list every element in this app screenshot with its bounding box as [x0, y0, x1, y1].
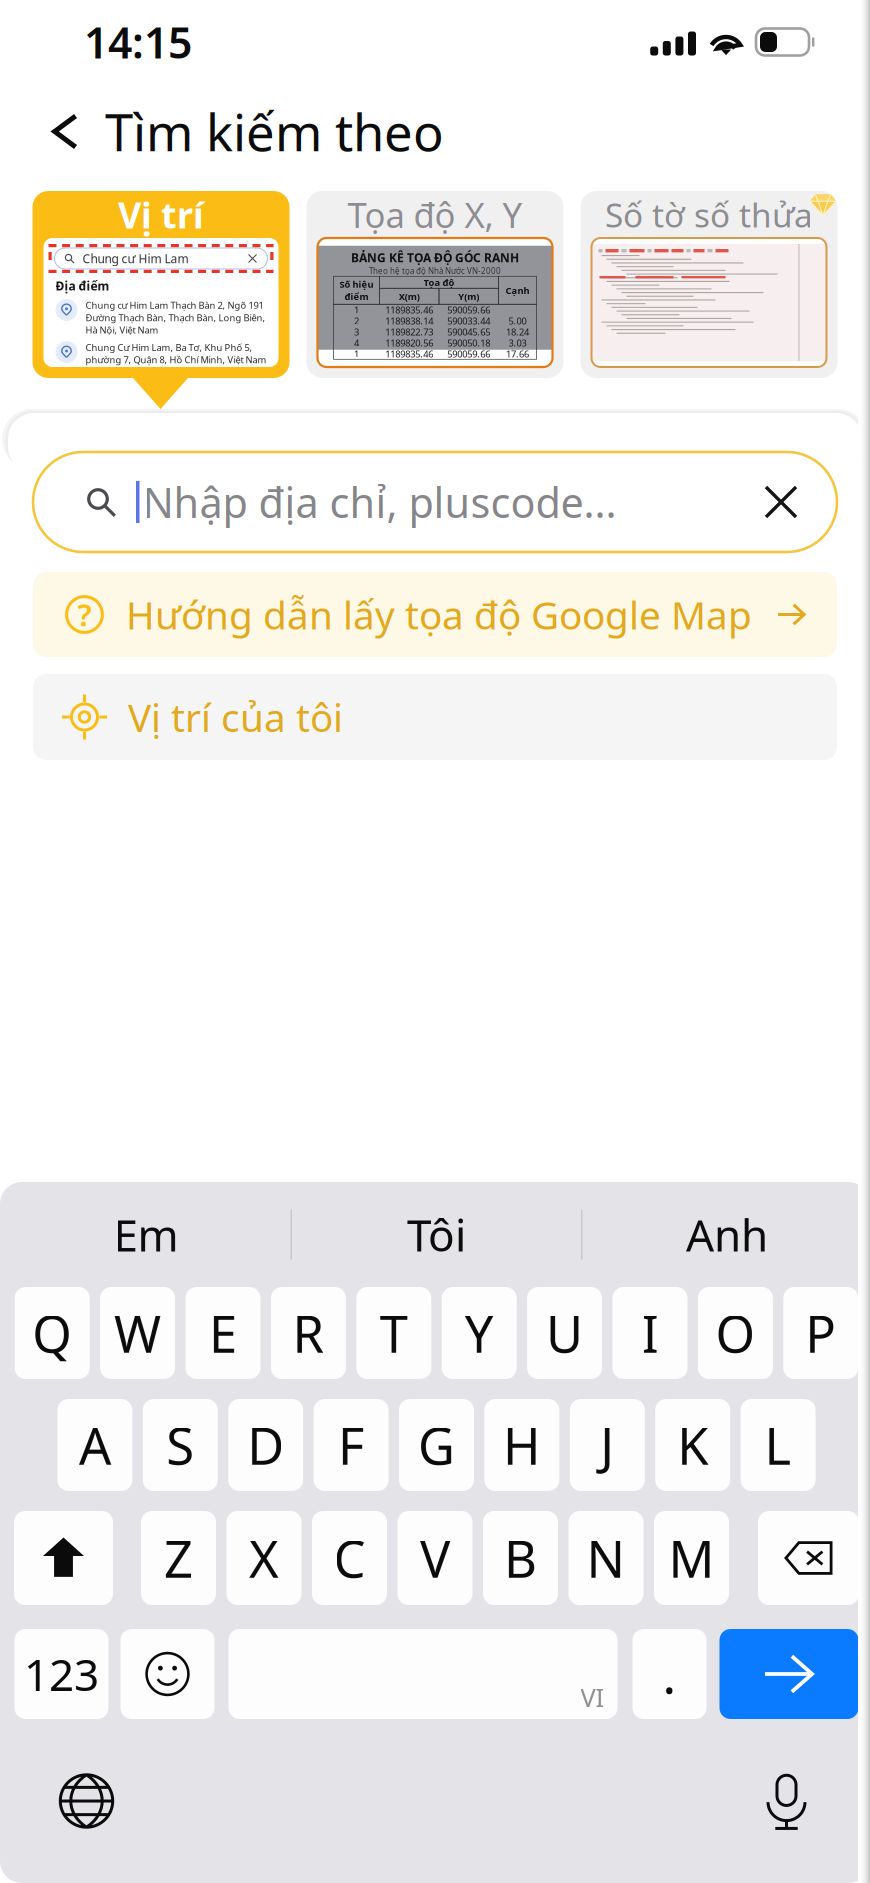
button[interactable]: I — [612, 1287, 687, 1379]
button[interactable]: Shift — [14, 1511, 113, 1605]
staticText: P — [805, 1299, 836, 1367]
button[interactable]: Q — [15, 1287, 90, 1379]
button[interactable]: Delete — [758, 1511, 859, 1605]
staticText: N — [586, 1524, 625, 1592]
button[interactable]: E — [185, 1287, 260, 1379]
staticText: Theo hệ tọa độ Nhà Nước VN-2000 — [369, 266, 501, 276]
staticText: D — [247, 1411, 284, 1479]
staticText: 590050.18 — [447, 337, 490, 349]
staticText: Tôi — [407, 1205, 466, 1264]
button[interactable]: O — [698, 1287, 773, 1379]
button[interactable]: Số tờ số thửa — [580, 191, 837, 378]
button[interactable]: M — [654, 1511, 729, 1605]
staticText: Anh — [686, 1205, 768, 1264]
staticText: S — [166, 1411, 194, 1479]
button[interactable]: B — [483, 1511, 558, 1605]
staticText: Y — [465, 1299, 494, 1367]
staticText: 1189838.14 — [385, 315, 433, 327]
button[interactable]: ? — [33, 572, 837, 657]
staticText: L — [765, 1411, 792, 1479]
staticText: 18.24 — [506, 326, 529, 338]
staticText: VI — [580, 1680, 604, 1714]
staticText: R — [292, 1299, 324, 1367]
button[interactable]: Em — [1, 1182, 291, 1287]
staticText: BẢNG KÊ TỌA ĐỘ GÓC RANH — [351, 250, 519, 266]
staticText: Vị trí — [118, 191, 204, 238]
button[interactable]: R — [271, 1287, 346, 1379]
staticText: 5.00 — [508, 315, 526, 327]
button[interactable]: D — [228, 1399, 303, 1491]
staticText: G — [418, 1411, 455, 1479]
staticText: A — [79, 1411, 111, 1479]
button[interactable]: V — [397, 1511, 472, 1605]
staticText: Nhập địa chỉ, pluscode... — [142, 475, 616, 529]
staticText: Cạnh — [505, 284, 529, 296]
staticText: H — [503, 1411, 541, 1479]
staticText: C — [333, 1524, 365, 1592]
button[interactable]: C — [312, 1511, 387, 1605]
staticText: Q — [32, 1299, 72, 1367]
button[interactable]: Vị trí — [32, 191, 289, 378]
staticText: 1189820.56 — [385, 337, 433, 349]
staticText: ? — [77, 594, 91, 635]
staticText: 590033.44 — [447, 315, 490, 327]
button[interactable]: P — [783, 1287, 858, 1379]
staticText: 590059.66 — [447, 348, 490, 360]
button[interactable]: Tọa độ X, Y — [306, 191, 563, 378]
staticText: 3 — [354, 326, 359, 338]
button[interactable]: Switch keyboard — [46, 1761, 126, 1841]
button[interactable]: Emoji — [120, 1629, 214, 1719]
button[interactable]: L — [741, 1399, 816, 1491]
staticText: X — [249, 1524, 279, 1592]
staticText: O — [715, 1299, 755, 1367]
button[interactable]: U — [527, 1287, 602, 1379]
button[interactable]: Tôi — [292, 1182, 581, 1287]
staticText: I — [641, 1299, 658, 1367]
staticText: 590059.66 — [447, 304, 490, 316]
button[interactable]: Go — [719, 1629, 858, 1719]
button[interactable]: . — [632, 1629, 706, 1719]
staticText: F — [338, 1411, 364, 1479]
button[interactable]: Y — [442, 1287, 517, 1379]
staticText: 1189822.73 — [385, 326, 433, 338]
staticText: Tọa độ — [423, 276, 454, 288]
button[interactable]: X — [226, 1511, 301, 1605]
button[interactable]: W — [100, 1287, 175, 1379]
button[interactable]: H — [484, 1399, 559, 1491]
button[interactable]: Back — [41, 94, 87, 168]
staticText: 4 — [354, 337, 359, 349]
button[interactable]: K — [655, 1399, 730, 1491]
staticText: Y(m) — [458, 290, 479, 302]
button[interactable]: Clear — [747, 468, 815, 536]
button[interactable]: Vị trí của tôi — [33, 674, 837, 760]
button[interactable]: Anh — [582, 1182, 870, 1287]
staticText: Hướng dẫn lấy tọa độ Google Map — [126, 589, 752, 640]
button[interactable]: T — [356, 1287, 431, 1379]
staticText: 590045.65 — [447, 326, 490, 338]
staticText: U — [546, 1299, 583, 1367]
button[interactable]: F — [314, 1399, 389, 1491]
button[interactable]: S — [143, 1399, 218, 1491]
staticText: Tìm kiếm theo — [105, 98, 444, 165]
staticText: M — [668, 1524, 714, 1592]
staticText: W — [114, 1299, 161, 1367]
staticText: E — [209, 1299, 237, 1367]
staticText: 17.66 — [506, 348, 529, 360]
staticText: điểm — [344, 290, 368, 303]
button[interactable]: N — [568, 1511, 643, 1605]
staticText: 2 — [354, 315, 359, 327]
staticText: 1189835.46 — [385, 304, 433, 316]
button[interactable]: J — [570, 1399, 645, 1491]
button[interactable]: Z — [141, 1511, 216, 1605]
staticText: Tọa độ X, Y — [347, 191, 522, 237]
staticText: Số hiệu — [339, 278, 373, 290]
staticText: Chung cư Him Lam Thạch Bàn 2, Ngõ 191 Đư… — [85, 299, 265, 336]
staticText: 14:15 — [84, 14, 192, 70]
staticText: 123 — [24, 1645, 99, 1703]
button[interactable]: A — [57, 1399, 132, 1491]
button[interactable]: G — [399, 1399, 474, 1491]
button[interactable]: 123 — [14, 1629, 108, 1719]
button[interactable]: Dictate — [746, 1761, 826, 1841]
staticText: J — [600, 1411, 614, 1479]
button[interactable]: Space — [228, 1629, 617, 1719]
